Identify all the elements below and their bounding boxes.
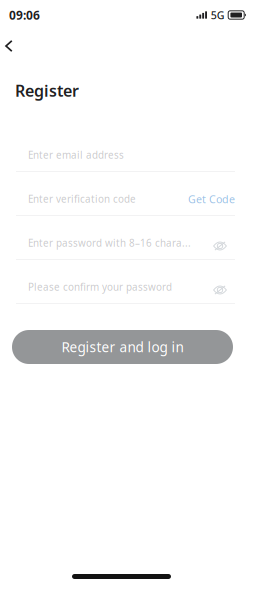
staticText: Enter email address [28,148,124,162]
staticText: Please confirm your password [28,280,172,294]
button[interactable]: Show confirmed password [213,278,235,296]
staticText: Register and log in [61,338,183,356]
staticText: 5G [211,8,225,22]
staticText: Enter password with 8–16 chara... [28,236,191,250]
staticText: Register [15,80,79,101]
button[interactable]: Show password [213,234,235,252]
staticText: Enter verification code [28,192,136,206]
staticText: Get Code [188,192,235,206]
button[interactable]: Register and log in [12,330,233,364]
button[interactable]: Back [0,36,33,56]
staticText: 09:06 [9,7,40,23]
button[interactable]: Get Code [188,192,235,206]
